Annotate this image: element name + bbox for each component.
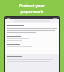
staticText: Protect your paperwork <box>19 3 45 14</box>
button[interactable]: Address bar <box>7 20 57 22</box>
